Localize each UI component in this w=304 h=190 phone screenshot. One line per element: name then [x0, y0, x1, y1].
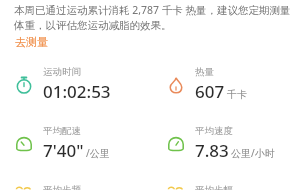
staticText: 01:02:53 [43, 80, 111, 103]
other: Calories [166, 75, 186, 95]
staticText: 7'40" [43, 139, 84, 162]
staticText: 平均速度 [195, 125, 233, 137]
staticText: 运动时间 [43, 66, 81, 78]
staticText: 7.83 [195, 139, 229, 162]
staticText: 平均步幅 [195, 184, 233, 190]
staticText: 607 [195, 80, 225, 103]
other: Average pace [14, 134, 34, 154]
button[interactable]: Duration [0, 66, 152, 103]
button[interactable]: Calories [152, 66, 304, 103]
staticText: 去测量 [15, 35, 48, 49]
staticText: 平均步频 [43, 184, 81, 190]
button[interactable]: Average speed [152, 125, 304, 162]
button[interactable]: Average stride [152, 184, 304, 190]
staticText: 本周已通过运动累计消耗 2,787 千卡 热量，建议您定期测量体重，以评估您运动… [14, 3, 292, 32]
staticText: /公里 [86, 146, 110, 160]
button[interactable]: Average pace [0, 125, 152, 162]
other: Average speed [166, 134, 186, 154]
button[interactable]: 去测量 [14, 34, 49, 50]
button[interactable]: Average cadence [0, 184, 152, 190]
staticText: 平均配速 [43, 125, 81, 137]
other: Average stride [166, 184, 186, 190]
other: Duration [14, 75, 34, 95]
staticText: 公里/小时 [231, 146, 275, 160]
other: Average cadence [14, 184, 34, 190]
staticText: 千卡 [227, 88, 247, 101]
staticText: 热量 [195, 66, 214, 78]
